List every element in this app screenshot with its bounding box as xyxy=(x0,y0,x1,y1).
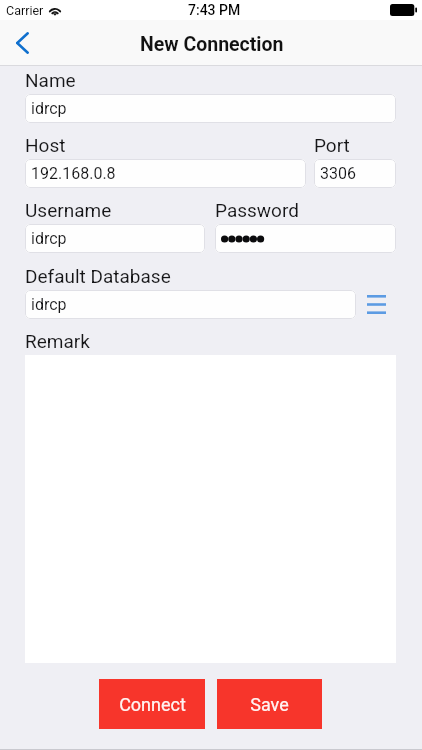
button[interactable]: idrcp xyxy=(25,94,396,123)
staticText: Password xyxy=(215,199,299,221)
button[interactable]: Connect xyxy=(99,679,205,729)
staticText: Host xyxy=(25,134,306,156)
staticText: Connect xyxy=(119,694,186,715)
staticText: 7:43 PM xyxy=(188,2,241,18)
button[interactable] xyxy=(215,224,396,253)
button[interactable]: Back xyxy=(4,25,40,61)
button[interactable]: Browse databases xyxy=(356,290,396,319)
button[interactable]: 192.168.0.8 xyxy=(25,159,306,188)
button[interactable]: 3306 xyxy=(314,159,396,188)
staticText: 3306 xyxy=(320,164,356,183)
staticText: Save xyxy=(250,694,289,715)
staticText: Carrier xyxy=(6,3,44,18)
button[interactable]: idrcp xyxy=(25,290,356,319)
staticText: Username xyxy=(25,199,205,221)
button[interactable]: idrcp xyxy=(25,224,205,253)
staticText: idrcp xyxy=(31,99,67,118)
staticText: Remark xyxy=(25,330,90,352)
staticText: New Connection xyxy=(140,33,284,56)
button[interactable]: Save xyxy=(217,679,322,729)
staticText: Port xyxy=(314,134,350,156)
staticText: Name xyxy=(25,69,76,91)
staticText: 192.168.0.8 xyxy=(31,164,116,183)
staticText: idrcp xyxy=(31,295,67,314)
staticText: Default Database xyxy=(25,265,171,287)
staticText: idrcp xyxy=(31,229,67,248)
